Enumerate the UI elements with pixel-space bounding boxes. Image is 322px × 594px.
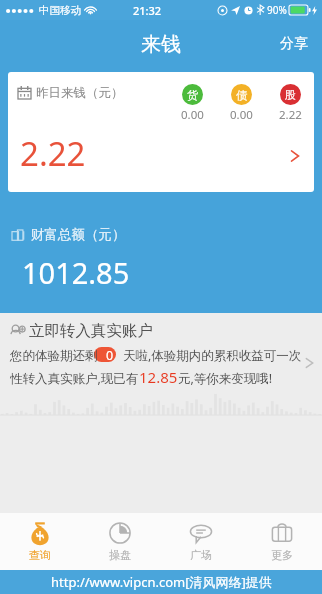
staticText: 债 (236, 88, 247, 102)
staticText: 12.85 (139, 367, 178, 387)
button[interactable]: 分享 (266, 25, 322, 63)
staticText: 1012.85 (22, 253, 130, 292)
staticText: 2.22 (20, 131, 86, 176)
staticText: 性转入真实账户,现已有 (10, 370, 139, 387)
staticText: 2.22 (279, 107, 302, 123)
staticText: 货 (187, 88, 198, 102)
staticText: 21:32 (133, 3, 162, 18)
staticText: 广场 (190, 548, 212, 562)
button[interactable]: 操盘 (80, 513, 160, 570)
button[interactable]: 查询 (0, 513, 80, 570)
button[interactable]: 广场 (160, 513, 241, 570)
staticText: 股 (285, 88, 296, 102)
staticText: 元,等你来变现哦! (178, 370, 273, 387)
staticText: 您的体验期还剩 (10, 348, 98, 364)
staticText: 0.00 (230, 107, 253, 123)
staticText: 操盘 (109, 548, 131, 562)
staticText: 更多 (271, 548, 293, 562)
staticText: 0.00 (181, 107, 204, 123)
staticText: 来钱 (141, 32, 181, 57)
staticText: 天啦,体验期内的累积收益可一次 (123, 347, 302, 364)
button[interactable]: 昨日来钱（元） (8, 72, 314, 192)
button[interactable]: 财富总额（元） (0, 196, 322, 313)
staticText: 昨日来钱（元） (36, 85, 124, 101)
button[interactable]: 更多 (241, 513, 322, 570)
staticText: 立即转入真实账户 (29, 321, 153, 341)
button[interactable]: 立即转入真实账户 (0, 313, 322, 421)
staticText: 中国移动 (39, 4, 81, 17)
staticText: http://www.vipcn.com[清风网络]提供 (51, 573, 272, 591)
staticText: 分享 (280, 35, 308, 53)
staticText: 查询 (29, 548, 51, 562)
staticText: 财富总额（元） (31, 226, 126, 243)
staticText: 90% (267, 3, 287, 17)
staticText: 0 (106, 347, 114, 364)
